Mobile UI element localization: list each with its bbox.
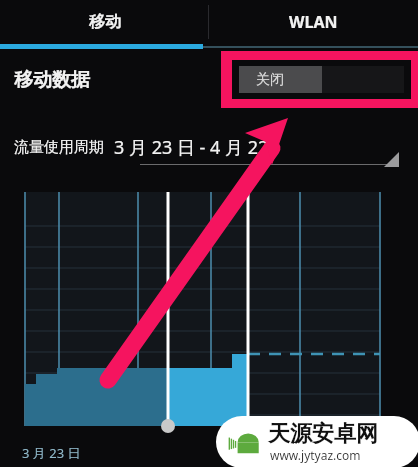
- staticText: 天源安卓网: [268, 420, 378, 448]
- staticText: 3 月 23 日 - 4 月 22: [114, 135, 269, 160]
- button[interactable]: 移动数据 关闭: [239, 66, 404, 93]
- staticText: 移动: [89, 12, 121, 32]
- button[interactable]: 移动: [0, 0, 209, 44]
- button[interactable]: WLAN: [209, 0, 418, 44]
- staticText: 流量使用周期: [14, 138, 104, 157]
- staticText: www.jytyaz.com: [270, 447, 361, 463]
- staticText: WLAN: [289, 11, 338, 33]
- button[interactable]: 流量使用周期: [0, 130, 418, 164]
- staticText: 移动数据: [14, 68, 90, 92]
- staticText: 关闭: [256, 71, 284, 89]
- staticText: 3 月 23 日: [22, 444, 81, 462]
